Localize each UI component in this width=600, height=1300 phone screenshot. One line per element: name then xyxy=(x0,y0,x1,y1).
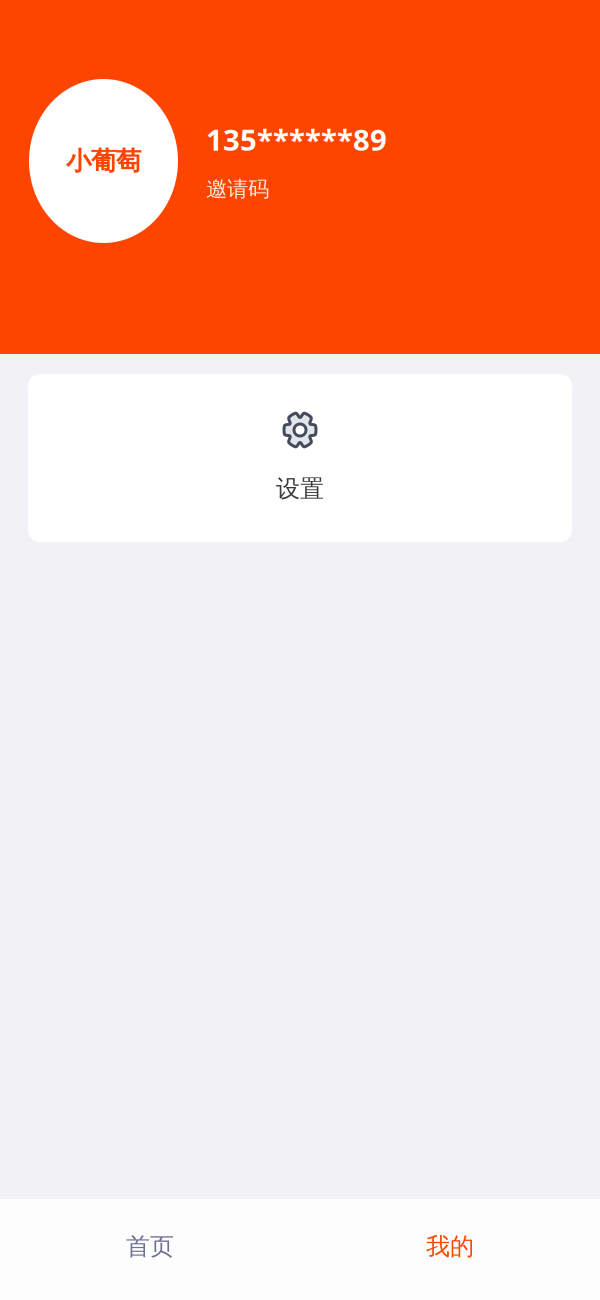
staticText: 135******89 xyxy=(206,120,387,159)
button[interactable]: 首页 xyxy=(0,1199,300,1300)
staticText: 设置 xyxy=(276,474,324,503)
staticText: 小葡萄 xyxy=(66,145,141,176)
button[interactable]: 135******89 xyxy=(206,120,387,202)
button[interactable]: 我的 xyxy=(300,1199,600,1300)
staticText: 我的 xyxy=(426,1232,474,1261)
staticText: 邀请码 xyxy=(206,176,269,202)
button[interactable]: 头像 xyxy=(29,79,178,243)
button[interactable]: 设置 xyxy=(28,374,572,542)
staticText: 首页 xyxy=(126,1232,174,1261)
